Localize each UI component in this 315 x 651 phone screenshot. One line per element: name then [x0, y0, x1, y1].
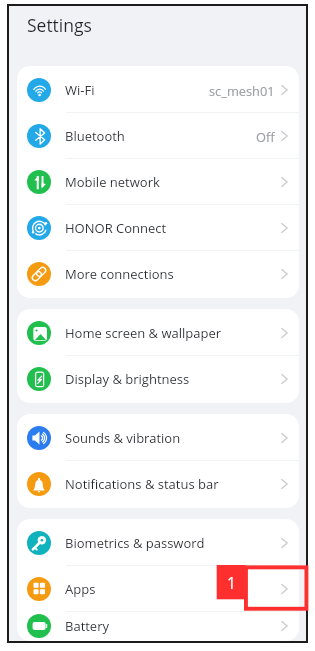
button[interactable]: Sounds & vibration	[17, 415, 299, 461]
button[interactable]: Battery	[17, 612, 299, 640]
staticText: sc_mesh01	[209, 82, 275, 99]
staticText: Battery	[65, 617, 109, 635]
button[interactable]: Biometrics & password	[17, 520, 299, 566]
staticText: Display & brightness	[65, 370, 190, 388]
staticText: Biometrics & password	[65, 534, 205, 552]
button[interactable]: More connections	[17, 251, 299, 297]
staticText: Home screen & wallpaper	[65, 324, 222, 342]
staticText: Bluetooth	[65, 127, 125, 145]
button[interactable]: Bluetooth	[17, 113, 299, 159]
staticText: 1	[217, 572, 246, 593]
button[interactable]: Home screen & wallpaper	[17, 310, 299, 356]
button[interactable]: Wi-Fi	[17, 67, 299, 113]
staticText: Off	[256, 128, 275, 145]
button[interactable]: Display & brightness	[17, 356, 299, 402]
staticText: Notifications & status bar	[65, 475, 219, 493]
staticText: Apps	[65, 580, 96, 598]
staticText: Settings	[27, 13, 92, 37]
button[interactable]: Mobile network	[17, 159, 299, 205]
button[interactable]: HONOR Connect	[17, 205, 299, 251]
staticText: Mobile network	[65, 173, 160, 191]
staticText: Sounds & vibration	[65, 429, 181, 447]
button[interactable]: Notifications & status bar	[17, 461, 299, 507]
staticText: Wi-Fi	[65, 81, 95, 99]
button[interactable]: Apps	[17, 566, 299, 612]
staticText: More connections	[65, 265, 174, 283]
staticText: HONOR Connect	[65, 219, 167, 237]
